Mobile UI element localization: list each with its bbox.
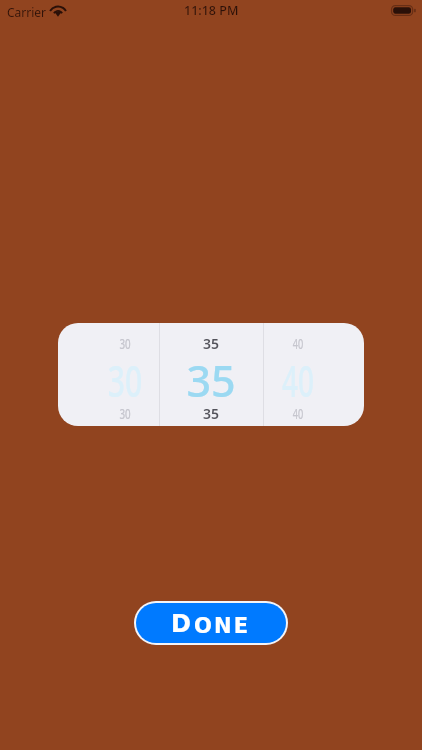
staticText: 40 xyxy=(272,351,324,410)
staticText: 11:18 PM xyxy=(184,2,239,19)
button[interactable]: 30 xyxy=(58,323,159,426)
staticText: D xyxy=(171,610,194,638)
button[interactable]: 40 xyxy=(264,323,364,426)
staticText: 30 xyxy=(97,334,153,353)
button[interactable]: D xyxy=(136,603,286,643)
staticText: 30 xyxy=(97,404,153,423)
staticText: 35 xyxy=(171,351,251,410)
button[interactable]: 35 xyxy=(160,323,263,426)
staticText: 40 xyxy=(272,404,324,423)
staticText: Carrier xyxy=(7,4,47,20)
staticText: 35 xyxy=(171,334,251,353)
staticText: ONE xyxy=(194,614,251,638)
staticText: 35 xyxy=(171,404,251,423)
staticText: 40 xyxy=(272,334,324,353)
staticText: 30 xyxy=(97,351,153,410)
